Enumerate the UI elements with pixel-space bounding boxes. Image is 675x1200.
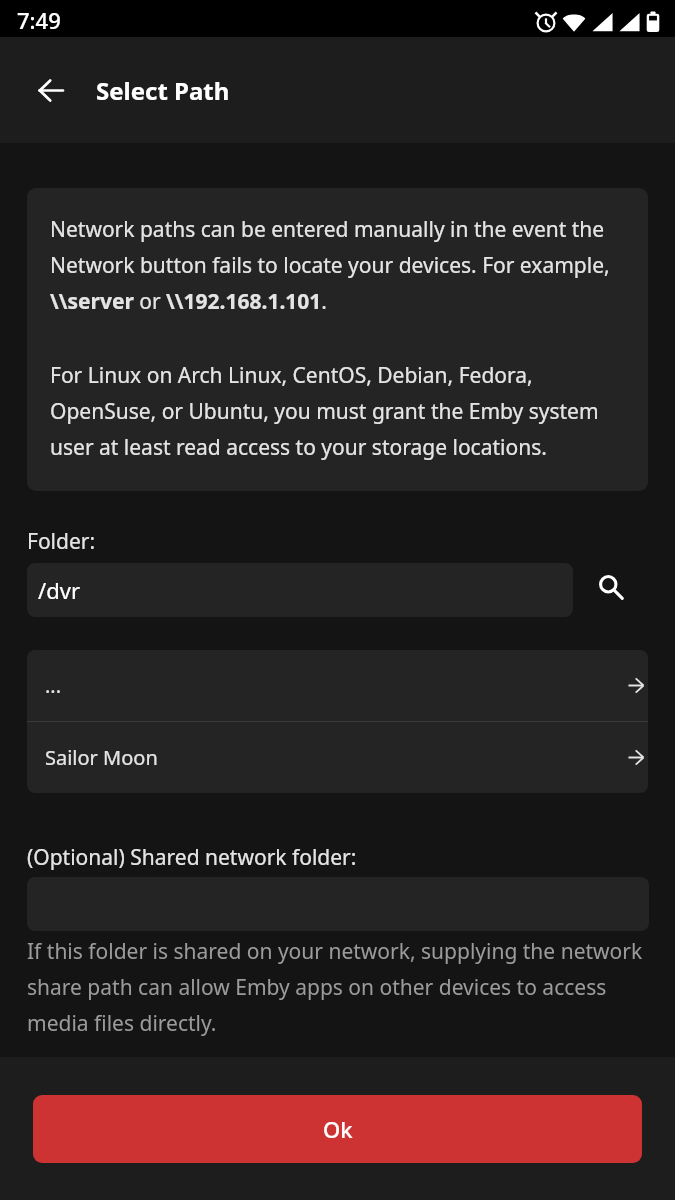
staticText: ... [45,672,62,699]
button[interactable]: Ok [33,1095,642,1163]
button[interactable]: /dvr [27,563,573,617]
staticText: /dvr [38,575,80,605]
staticText: 7:49 [17,5,61,35]
staticText: (Optional) Shared network folder: [27,843,357,872]
staticText: Select Path [96,74,230,107]
button[interactable]: ... [27,650,648,721]
staticText: If this folder is shared on your network… [27,931,643,1039]
staticText: Sailor Moon [45,744,158,771]
staticText: Folder: [27,527,96,556]
staticText: Ok [323,1114,353,1144]
staticText: Network paths can be entered manually in… [50,209,610,317]
button[interactable]: Sailor Moon [27,722,648,793]
staticText: For Linux on Arch Linux, CentOS, Debian,… [50,355,599,463]
button[interactable]: Back [27,66,75,114]
button[interactable]: Search [573,563,649,617]
